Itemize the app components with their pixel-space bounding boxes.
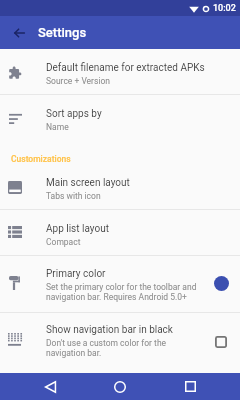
button[interactable]: App list layout — [0, 210, 240, 255]
button[interactable]: Navigate up — [0, 16, 38, 49]
staticText: Settings — [38, 25, 87, 40]
button[interactable]: Sort apps by — [0, 95, 240, 142]
staticText: Set the primary color for the toolbar an… — [46, 282, 197, 292]
staticText: navigation bar. Requires Android 5.0+ — [46, 292, 187, 302]
staticText: App list layout — [46, 223, 109, 235]
staticText: Name — [46, 122, 69, 132]
staticText: Default filename for extracted APKs — [46, 62, 205, 74]
staticText: Compact — [46, 237, 81, 247]
staticText: Primary color — [46, 268, 106, 280]
button[interactable]: Choose primary color — [214, 276, 229, 291]
button[interactable]: Show navigation bar in black — [210, 331, 232, 353]
button[interactable]: Default filename for extracted APKs — [0, 49, 240, 95]
button[interactable]: Recent apps — [166, 373, 214, 400]
staticText: navigation bar. — [46, 348, 102, 358]
staticText: Main screen layout — [46, 177, 130, 189]
button[interactable]: Home — [96, 373, 144, 400]
staticText: Tabs with icon — [46, 191, 101, 201]
button[interactable]: Show navigation bar in black — [0, 312, 240, 372]
staticText: Source + Version — [46, 76, 110, 86]
button[interactable]: Back — [26, 373, 74, 400]
button[interactable]: Main screen layout — [0, 166, 240, 209]
button[interactable]: Primary color — [0, 255, 240, 312]
staticText: Don't use a custom color for the — [46, 338, 167, 348]
staticText: Show navigation bar in black — [46, 324, 173, 336]
staticText: Customizations — [11, 154, 71, 164]
staticText: Sort apps by — [46, 108, 102, 120]
staticText: 10:02 — [213, 3, 236, 14]
